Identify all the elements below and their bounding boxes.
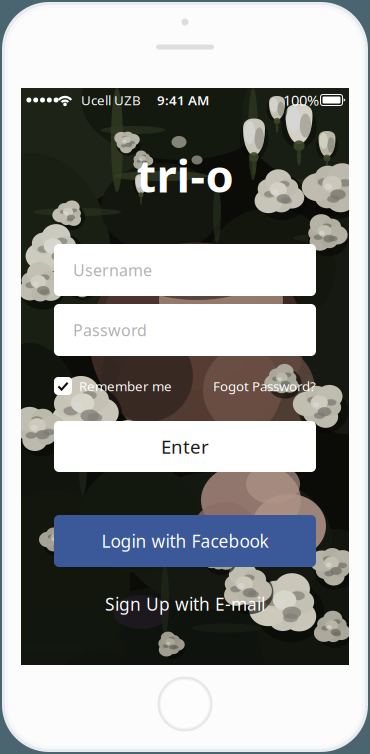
button[interactable]: Username xyxy=(54,244,316,296)
staticText: 9:41 AM xyxy=(157,91,209,109)
staticText: tri-o xyxy=(136,145,233,205)
button[interactable]: Sign Up with E-mail xyxy=(54,592,316,616)
button[interactable]: Enter xyxy=(54,421,316,472)
staticText: Username xyxy=(73,259,152,281)
staticText: Ucell UZB xyxy=(81,91,141,109)
staticText: 100% xyxy=(283,90,319,110)
staticText: Remember me xyxy=(79,377,172,395)
button[interactable]: Login with Facebook xyxy=(54,515,316,567)
staticText: Login with Facebook xyxy=(101,529,268,552)
button[interactable]: Fogot Password? xyxy=(213,376,316,396)
staticText: Password xyxy=(73,319,147,341)
staticText: Enter xyxy=(161,434,209,459)
button[interactable]: Password xyxy=(54,304,316,356)
staticText: Sign Up with E-mail xyxy=(105,592,265,615)
button[interactable]: Remember me xyxy=(54,376,172,396)
staticText: Fogot Password? xyxy=(213,377,316,395)
